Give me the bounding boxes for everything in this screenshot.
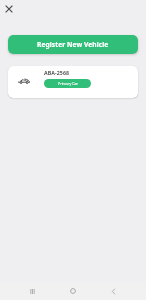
button[interactable]: Home xyxy=(66,282,80,300)
button[interactable]: Close xyxy=(2,2,16,16)
staticText: ABA-2568 xyxy=(44,69,70,76)
button[interactable]: ABA-2568 xyxy=(8,66,138,98)
staticText: Primary Car xyxy=(58,81,78,86)
button[interactable]: Recents xyxy=(25,282,39,300)
staticText: Register New Vehicle xyxy=(37,40,109,49)
button[interactable]: Register New Vehicle xyxy=(8,35,138,54)
button[interactable]: Primary Car xyxy=(44,79,91,88)
button[interactable]: Back xyxy=(106,282,120,300)
